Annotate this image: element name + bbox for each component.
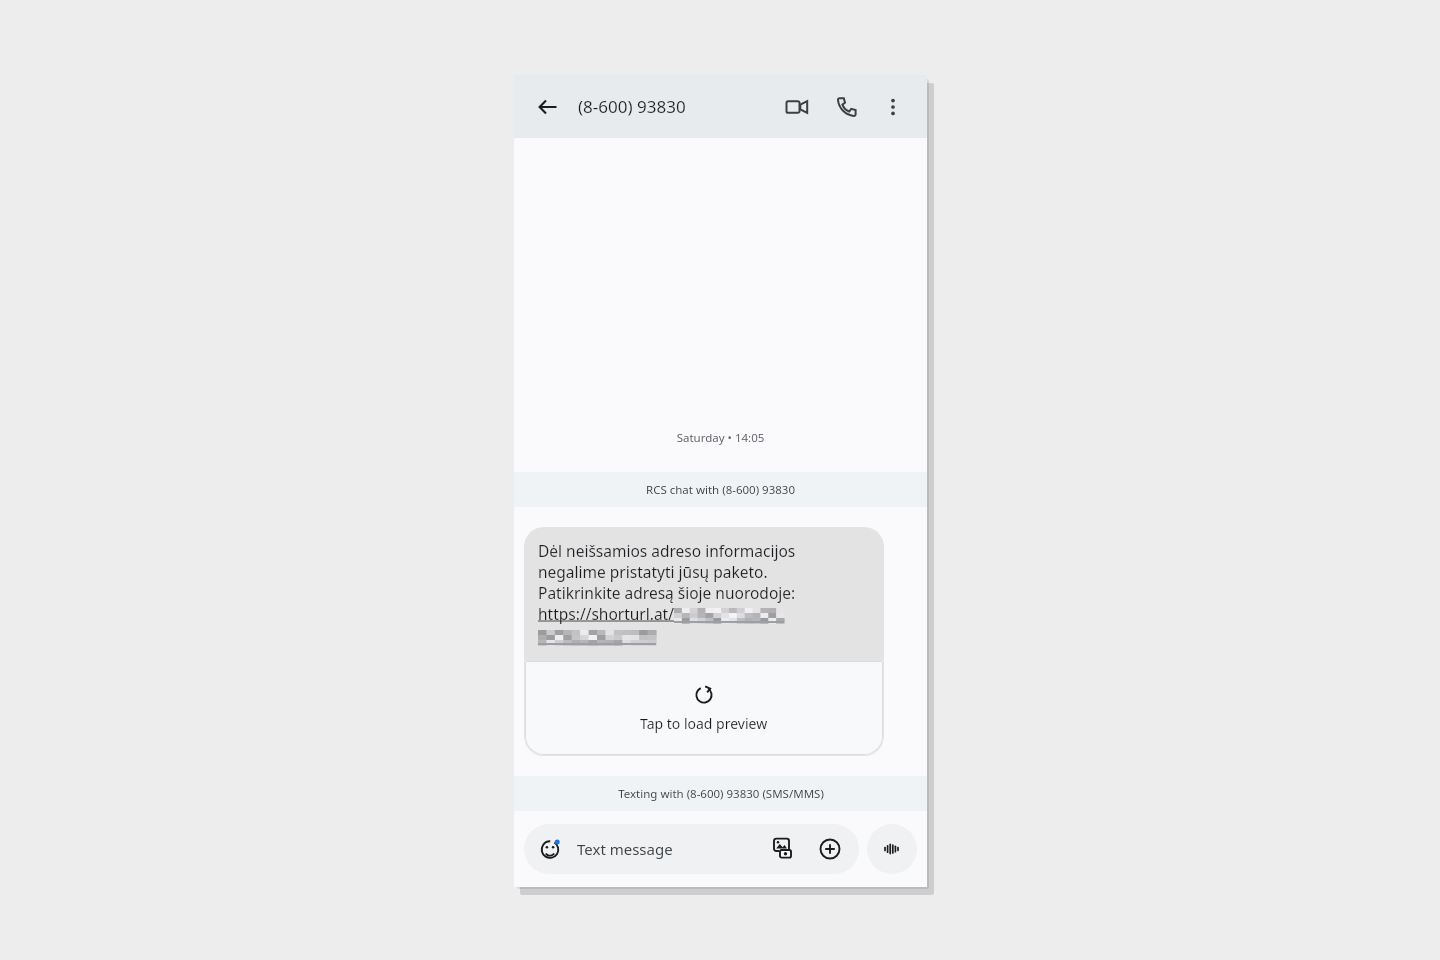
button[interactable]: More options	[873, 87, 913, 127]
button[interactable]: Add attachment	[813, 832, 847, 866]
staticText: https://shorturl.at/	[538, 603, 674, 624]
staticText: Dėl neišsamios adreso informacijos	[538, 540, 796, 561]
staticText: negalime pristatyti jūsų paketo.	[538, 561, 768, 582]
button[interactable]: Call	[827, 87, 867, 127]
button[interactable]: Back	[528, 87, 568, 127]
button[interactable]: Video call	[777, 87, 817, 127]
staticText: Saturday • 14:05	[514, 430, 927, 446]
button[interactable]: Emoji	[536, 834, 566, 864]
staticText: Text message	[577, 839, 673, 859]
button[interactable]: Dėl neišsamios adreso informacijos	[524, 527, 884, 756]
staticText: Tap to load preview	[640, 714, 768, 733]
button[interactable]: Record voice message	[867, 824, 917, 874]
staticText: (8-600) 93830	[578, 95, 686, 118]
button[interactable]: Tap to load preview	[525, 661, 883, 755]
staticText: Texting with (8-600) 93830 (SMS/MMS)	[618, 786, 824, 802]
button[interactable]: Attach image	[767, 832, 801, 866]
staticText: Patikrinkite adresą šioje nuorodoje:	[538, 582, 796, 603]
button[interactable]: Emoji	[524, 824, 859, 874]
staticText: RCS chat with (8-600) 93830	[646, 482, 795, 498]
